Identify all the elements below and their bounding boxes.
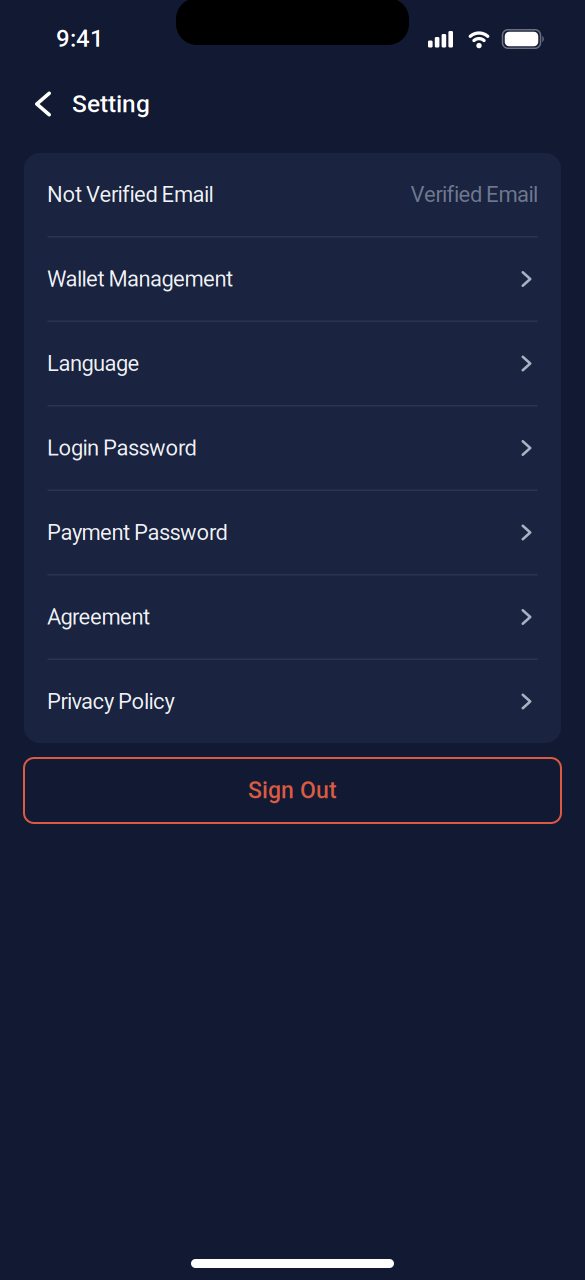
button[interactable]: Not Verified Email [24, 153, 561, 236]
staticText: Verified Email [410, 182, 538, 207]
button[interactable]: Wallet Management [24, 237, 561, 320]
button[interactable]: Sign Out [24, 758, 561, 823]
button[interactable]: Agreement [24, 575, 561, 658]
staticText: Login Password [47, 435, 196, 461]
staticText: Payment Password [47, 520, 227, 545]
staticText: Agreement [47, 604, 150, 630]
button[interactable]: Privacy Policy [24, 660, 561, 743]
staticText: 9:41 [56, 24, 104, 52]
staticText: Language [47, 351, 139, 376]
staticText: Setting [72, 90, 150, 118]
button[interactable]: Login Password [24, 406, 561, 489]
staticText: Privacy Policy [47, 689, 174, 714]
staticText: Sign Out [248, 777, 337, 804]
button[interactable]: Language [24, 322, 561, 405]
button[interactable]: Payment Password [24, 491, 561, 574]
button[interactable] [0, 91, 72, 116]
staticText: Not Verified Email [47, 182, 213, 207]
staticText: Wallet Management [47, 266, 233, 292]
